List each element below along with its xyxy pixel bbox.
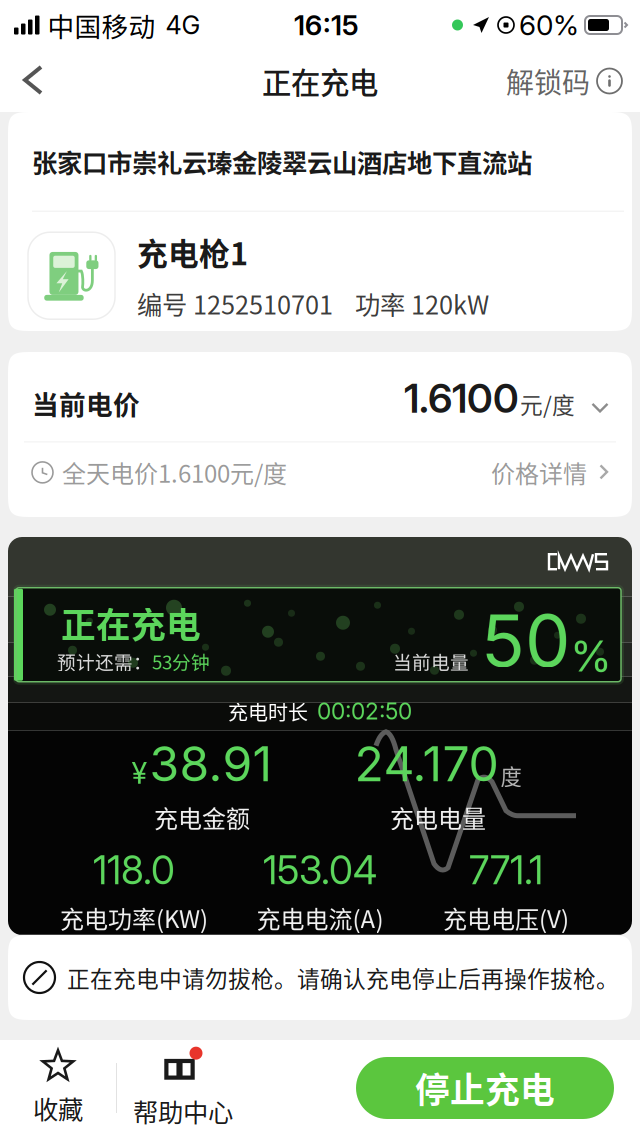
staticText: 价格详情 (491, 455, 587, 490)
staticText: 度 (500, 760, 521, 791)
staticText: ¥ (131, 755, 147, 791)
staticText: 充电金额 (154, 800, 250, 835)
staticText: 16:15 (294, 8, 359, 42)
staticText: 153.04 (263, 847, 377, 893)
button[interactable]: 收藏 (0, 1040, 116, 1136)
staticText: 充电电量 (390, 800, 486, 835)
staticText: 张家口市崇礼云瑧金陵翠云山酒店地下直流站 (32, 143, 532, 180)
staticText: 1.6100 (404, 374, 519, 422)
staticText: 正在充电 (262, 60, 378, 102)
staticText: % (570, 630, 612, 682)
staticText: 停止充电 (415, 1063, 555, 1113)
staticText: 充电功率(KW) (60, 900, 208, 935)
staticText: 中国移动 (47, 6, 155, 44)
staticText: 118.0 (93, 847, 175, 893)
staticText: 帮助中心 (133, 1093, 233, 1129)
staticText: 收藏 (33, 1090, 83, 1126)
staticText: 4G (165, 10, 200, 40)
staticText: 全天电价1.6100元/度 (62, 455, 287, 490)
staticText: 解锁码 (506, 61, 590, 101)
button[interactable]: 当前电价 (8, 352, 632, 441)
staticText: 00:02:50 (317, 697, 412, 725)
button[interactable]: 全天电价1.6100元/度 (8, 442, 632, 502)
staticText: 编号 1252510701 (137, 285, 333, 322)
button[interactable]: 停止充电 (356, 1057, 614, 1119)
staticText: 充电电压(V) (443, 900, 569, 935)
staticText: 当前电量 (393, 648, 469, 675)
button[interactable]: 帮助中心 (117, 1040, 249, 1136)
staticText: 60% (519, 8, 579, 42)
button[interactable]: 返回 (0, 50, 66, 112)
staticText: 功率 120kW (355, 285, 489, 322)
staticText: 充电电流(A) (256, 900, 383, 935)
staticText: 充电枪1 (137, 230, 248, 274)
staticText: 当前电价 (32, 384, 140, 422)
staticText: 正在充电中请勿拔枪。请确认充电停止后再操作拔枪。 (67, 961, 619, 994)
staticText: 元/度 (520, 388, 575, 420)
button[interactable]: 充电枪1 (8, 212, 632, 340)
staticText: 预计还需： (57, 648, 152, 675)
staticText: 38.91 (149, 735, 272, 793)
button[interactable]: 解锁码 (494, 50, 640, 112)
staticText: 正在充电 (61, 598, 201, 648)
staticText: 771.1 (469, 847, 543, 893)
staticText: 24.170 (354, 735, 498, 793)
staticText: 50 (481, 597, 570, 684)
staticText: 充电时长 (228, 697, 308, 726)
staticText: 53分钟 (152, 648, 210, 675)
